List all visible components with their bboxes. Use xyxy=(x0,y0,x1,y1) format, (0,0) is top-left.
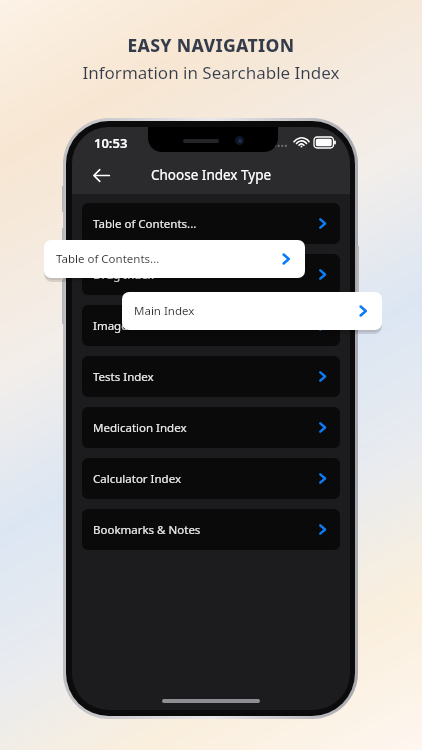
button[interactable]: Bookmarks & Notes xyxy=(82,509,340,550)
button[interactable]: Drug Index xyxy=(82,254,340,295)
staticText: Medication Index xyxy=(93,420,316,436)
button[interactable]: Main Index xyxy=(122,292,382,330)
button[interactable]: Calculator Index xyxy=(82,458,340,499)
staticText: Image Index xyxy=(93,318,316,334)
button[interactable]: Table of Contents... xyxy=(44,240,305,278)
staticText: Bookmarks & Notes xyxy=(93,522,316,538)
staticText: Choose Index Type xyxy=(151,166,272,184)
staticText: EASY NAVIGATION xyxy=(127,33,295,57)
staticText: Calculator Index xyxy=(93,471,316,487)
staticText: Table of Contents... xyxy=(56,251,279,267)
staticText: Information in Searchable Index xyxy=(82,61,340,84)
button[interactable]: Medication Index xyxy=(82,407,340,448)
staticText: Main Index xyxy=(134,303,356,319)
button[interactable]: Tests Index xyxy=(82,356,340,397)
staticText: Drug Index xyxy=(93,267,316,283)
button[interactable]: Table of Contents... xyxy=(82,203,340,244)
staticText: Tests Index xyxy=(93,369,316,385)
button[interactable]: Back xyxy=(86,160,116,190)
staticText: 10:53 xyxy=(94,134,128,152)
staticText: Table of Contents... xyxy=(93,216,316,232)
button[interactable]: Image Index xyxy=(82,305,340,346)
